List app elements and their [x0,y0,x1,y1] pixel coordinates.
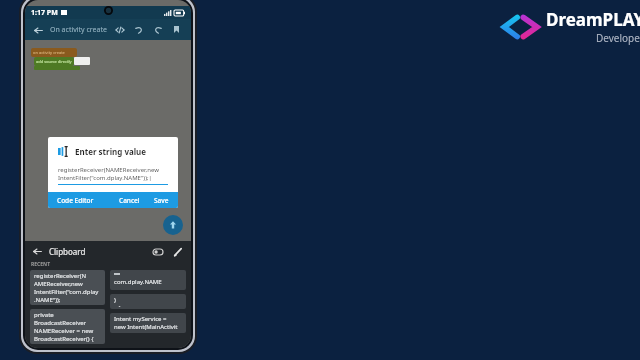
button[interactable]: on activity create [31,48,77,57]
staticText: On activity create [50,25,107,35]
staticText: RECENT [31,261,51,268]
button[interactable]: Undo [129,20,148,39]
button[interactable]: private BroadcastReceiver NAMEReceiver =… [30,309,105,344]
button[interactable]: Code Editor [55,193,96,208]
button[interactable]: Cancel [117,193,142,208]
button[interactable]: Add block [163,215,183,235]
button[interactable]: Save [167,20,186,39]
staticText: Enter string value [75,146,147,157]
staticText: add source directly [36,59,72,64]
button[interactable]: Back [30,244,45,259]
button[interactable]: ) }; [110,294,186,309]
staticText: Clipboard [49,246,86,257]
staticText: com.dplay.NAME [114,278,162,286]
staticText: 1:17 PM [31,8,58,18]
button[interactable]: registerReceiver(NAMEReceiver,new Intent… [58,166,168,185]
staticText: DreamPLAY [546,8,640,31]
button[interactable]: Redo [148,20,167,39]
staticText: Save [154,196,169,205]
staticText: Cancel [119,196,140,205]
button[interactable]: com.dplay.NAME [110,270,186,290]
button[interactable]: Code view [110,20,129,39]
button[interactable]: registerReceiver(N AMEReceiver,new Inten… [30,270,105,305]
button[interactable]: Edit [169,243,186,260]
staticText: registerReceiver(N AMEReceiver,new Inten… [34,272,99,303]
staticText: on activity create [33,50,65,55]
staticText: private BroadcastReceiver NAMEReceiver =… [34,311,94,342]
staticText: registerReceiver(NAMEReceiver,new Intent… [58,166,159,182]
staticText: ) }; [114,296,123,307]
button[interactable]: Back [30,22,46,38]
button[interactable]: Toggle [149,243,166,260]
button[interactable]: Save [152,193,171,208]
button[interactable]: add source directly [34,57,74,66]
button[interactable]: Intent myService = new Intent(MainActivi… [110,313,186,333]
staticText: Developer [596,31,640,45]
staticText: Code Editor [57,196,94,205]
staticText: Intent myService = new Intent(MainActivi… [114,315,178,331]
